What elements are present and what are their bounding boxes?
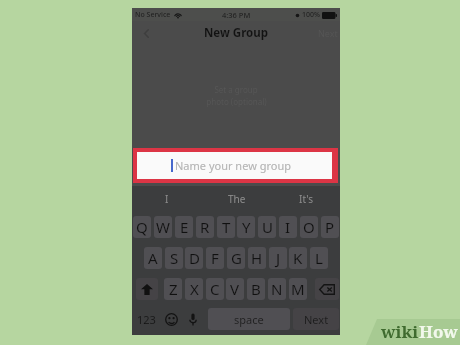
button[interactable]: P (321, 216, 339, 238)
button[interactable]: Emoji (160, 308, 183, 330)
staticText: X (190, 279, 199, 299)
staticText: Q (136, 217, 148, 237)
staticText: Next (304, 312, 329, 327)
button[interactable]: G (227, 247, 245, 269)
button[interactable]: F (206, 247, 224, 269)
button[interactable]: C (206, 278, 224, 300)
staticText: Name your new group (175, 158, 291, 173)
button[interactable]: X (185, 278, 203, 300)
button[interactable]: A (144, 247, 162, 269)
staticText: U (262, 217, 273, 237)
button[interactable]: B (247, 278, 265, 300)
staticText: No Service (135, 10, 171, 20)
staticText: B (251, 279, 261, 299)
button[interactable]: W (154, 216, 172, 238)
button[interactable]: Dictation (182, 308, 204, 330)
button[interactable]: space (208, 308, 290, 330)
button[interactable]: Shift (136, 278, 158, 300)
button[interactable]: U (258, 216, 276, 238)
button[interactable]: K (289, 247, 307, 269)
staticText: Z (169, 279, 178, 299)
staticText: 123 (137, 312, 156, 327)
staticText: V (230, 279, 240, 299)
staticText: 100% (302, 10, 320, 20)
button[interactable]: E (175, 216, 193, 238)
button[interactable]: Name your new group (133, 148, 338, 183)
staticText: How (419, 320, 458, 343)
staticText: P (325, 217, 335, 237)
staticText: K (293, 248, 303, 268)
staticText: D (189, 248, 200, 268)
staticText: 4:36 PM (222, 10, 251, 20)
staticText: I (285, 217, 291, 237)
staticText: I (165, 192, 169, 206)
staticText: S (170, 248, 179, 268)
button[interactable]: R (196, 216, 214, 238)
staticText: The (228, 192, 246, 206)
staticText: It's (299, 192, 313, 206)
staticText: New Group (204, 25, 268, 41)
staticText: F (211, 248, 219, 268)
button[interactable]: S (165, 247, 183, 269)
button[interactable]: J (269, 247, 287, 269)
button[interactable]: N (268, 278, 286, 300)
staticText: H (251, 248, 263, 268)
staticText: G (231, 248, 242, 268)
staticText: R (200, 217, 210, 237)
staticText: C (210, 279, 220, 299)
staticText: space (234, 312, 264, 327)
staticText: W (156, 217, 170, 237)
staticText: E (180, 217, 189, 237)
staticText: A (148, 248, 158, 268)
staticText: Y (242, 217, 251, 237)
button[interactable]: L (310, 247, 328, 269)
staticText: M (291, 279, 305, 299)
staticText: L (315, 248, 323, 268)
staticText: wiki (381, 320, 419, 343)
button[interactable]: O (300, 216, 318, 238)
staticText: O (303, 217, 315, 237)
staticText: J (276, 248, 281, 268)
button[interactable]: 123 (133, 308, 159, 330)
button[interactable]: Z (164, 278, 182, 300)
button[interactable]: Backspace (315, 278, 339, 300)
staticText: N (271, 279, 283, 299)
button[interactable]: I (279, 216, 297, 238)
button[interactable]: M (289, 278, 307, 300)
button[interactable]: Y (237, 216, 255, 238)
button[interactable]: Q (133, 216, 151, 238)
button[interactable]: Next (293, 308, 339, 330)
button[interactable]: D (185, 247, 203, 269)
staticText: T (222, 217, 231, 237)
button[interactable]: T (217, 216, 235, 238)
button[interactable]: H (248, 247, 266, 269)
button[interactable]: V (226, 278, 244, 300)
